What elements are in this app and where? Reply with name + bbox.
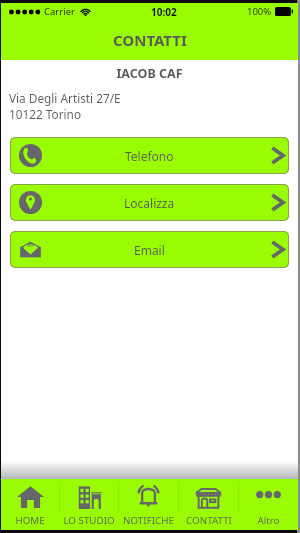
staticText: LO STUDIO <box>63 514 115 527</box>
staticText: CONTATTI <box>186 514 232 527</box>
staticText: 10:02 <box>151 5 177 19</box>
button[interactable]: Email <box>11 232 288 267</box>
staticText: Email <box>134 242 165 258</box>
staticText: Carrier <box>44 5 75 18</box>
staticText: Telefono <box>125 148 174 164</box>
button[interactable]: Home <box>1 479 59 530</box>
staticText: CONTATTI <box>113 30 187 50</box>
staticText: Altro <box>257 514 280 527</box>
button[interactable]: Notifiche <box>119 479 178 530</box>
staticText: Via Degli Artisti 27/E <box>9 90 121 106</box>
staticText: 100% <box>247 5 272 18</box>
staticText: NOTIFICHE <box>123 514 174 527</box>
staticText: HOME <box>15 514 45 527</box>
button[interactable]: Contatti <box>179 479 238 530</box>
staticText: Localizza <box>124 195 175 211</box>
staticText: 10122 Torino <box>9 106 82 122</box>
button[interactable]: Lo studio <box>60 479 118 530</box>
button[interactable]: Altro <box>239 479 298 530</box>
button[interactable]: Telefono <box>11 138 288 173</box>
button[interactable]: Localizza <box>11 185 288 220</box>
staticText: IACOB CAF <box>1 65 298 82</box>
